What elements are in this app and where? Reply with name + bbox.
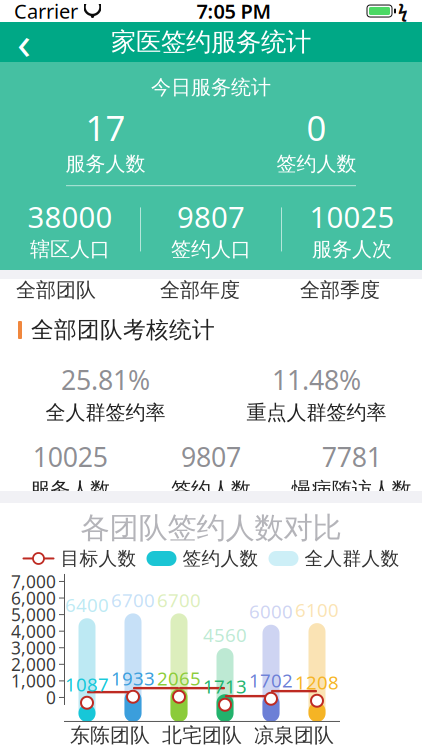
staticText: 5,000 [11,603,56,626]
staticText: 4,000 [11,620,56,643]
staticText: 1,000 [11,669,56,692]
staticText: 2,000 [11,653,56,676]
staticText: 签约人数 [171,477,251,502]
staticText: 全部团队考核统计 [31,316,215,344]
staticText: Carrier [14,0,78,24]
staticText: 9807 [177,197,245,236]
staticText: 7,000 [11,570,56,593]
staticText: 7781 [322,439,382,474]
staticText: 38000 [27,197,112,236]
staticText: 6700 [157,588,201,612]
staticText: 0 [306,105,326,151]
staticText: 凉泉团队 [254,723,334,748]
staticText: 4560 [203,622,247,647]
staticText: 重点人群签约率 [246,400,386,425]
staticText: 17 [85,105,125,151]
staticText: 北宅团队 [162,723,242,748]
staticText: 6700 [111,588,155,612]
staticText: 1933 [111,666,155,691]
staticText: 全部年度 [160,278,240,302]
staticText: 慢病随访人数 [292,477,412,502]
staticText: 东陈团队 [70,723,150,748]
staticText: 6,000 [11,586,56,609]
staticText: 10025 [33,439,108,474]
staticText: 家医签约服务统计 [111,26,311,57]
staticText: 11.48% [272,362,361,397]
staticText: 9807 [181,439,241,474]
staticText: 6000 [249,599,293,624]
staticText: 辖区人口 [30,237,110,262]
staticText: 3,000 [11,636,56,659]
staticText: 1713 [203,674,247,699]
staticText: 全部季度 [300,278,380,302]
staticText: 签约人数 [276,152,356,176]
staticText: ϟ [398,0,408,22]
staticText: 签约人口 [171,237,251,262]
staticText: 6400 [65,592,109,617]
staticText: 服务人数 [65,152,145,176]
staticText: 各团队签约人数对比 [80,510,341,546]
staticText: 今日服务统计 [151,75,271,100]
staticText: 1087 [65,672,109,697]
staticText: 服务人数 [30,477,110,502]
staticText: 签约人数 [182,547,258,570]
staticText: 0 [46,686,56,709]
staticText: 6100 [295,597,339,622]
staticText: 全部团队 [16,278,96,302]
staticText: 全人群人数 [304,547,399,570]
staticText: 10025 [309,197,394,236]
staticText: 目标人数 [60,547,136,570]
staticText: 全人群签约率 [45,400,165,425]
staticText: 1702 [249,668,293,693]
staticText: 服务人次 [312,237,392,262]
button[interactable]: 全部年度 [130,274,270,306]
staticText: ‹ [17,12,31,72]
staticText: 1208 [295,670,339,695]
staticText: 2065 [157,666,201,691]
button[interactable]: 全部团队 [0,274,130,306]
staticText: 25.81% [61,362,150,397]
button[interactable]: 全部季度 [270,274,410,306]
staticText: 7:05 PM [196,0,271,24]
button[interactable]: Back [0,22,48,62]
